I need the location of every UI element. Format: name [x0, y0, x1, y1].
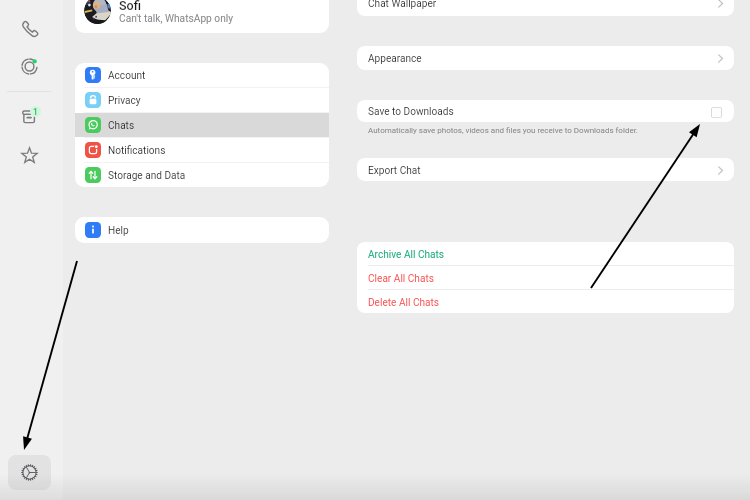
button[interactable]: Export Chat	[357, 158, 734, 181]
staticText: 1	[33, 107, 38, 117]
button[interactable]: Chat Wallpaper	[357, 0, 734, 16]
button[interactable]: Chats	[75, 113, 329, 137]
button[interactable]: Save to Downloads	[357, 100, 734, 122]
button[interactable]: Sofi	[75, 0, 329, 33]
staticText: Save to Downloads	[368, 106, 454, 118]
staticText: Sofi	[119, 0, 141, 13]
button[interactable]: Notifications	[75, 138, 329, 162]
staticText: Delete All Chats	[368, 297, 440, 309]
staticText: Can't talk, WhatsApp only	[119, 13, 234, 25]
button[interactable]: Privacy	[75, 88, 329, 112]
staticText: Chat Wallpaper	[368, 0, 437, 10]
staticText: Help	[108, 225, 129, 237]
staticText: Privacy	[108, 95, 141, 107]
button[interactable]: Archived	[0, 101, 63, 131]
staticText: Appearance	[368, 53, 422, 65]
button[interactable]: Delete All Chats	[357, 290, 734, 313]
button[interactable]: Save to Downloads checkbox	[711, 107, 722, 118]
button[interactable]: Archive All Chats	[357, 242, 734, 265]
staticText: Storage and Data	[108, 170, 186, 182]
staticText: Archive All Chats	[368, 249, 445, 261]
staticText: Chats	[108, 120, 135, 132]
staticText: Export Chat	[368, 165, 421, 177]
staticText: Clear All Chats	[368, 273, 434, 285]
button[interactable]: Starred	[0, 140, 63, 170]
button[interactable]: Status	[0, 51, 63, 81]
staticText: Notifications	[108, 145, 166, 157]
button[interactable]: Storage and Data	[75, 163, 329, 187]
staticText: Account	[108, 70, 146, 82]
button[interactable]: Account	[75, 63, 329, 87]
button[interactable]: Help	[75, 217, 329, 243]
button[interactable]: Calls	[0, 14, 63, 44]
staticText: Automatically save photos, videos and fi…	[368, 126, 638, 135]
button[interactable]: Settings	[8, 455, 51, 490]
button[interactable]: Clear All Chats	[357, 266, 734, 289]
button[interactable]: Appearance	[357, 46, 734, 70]
